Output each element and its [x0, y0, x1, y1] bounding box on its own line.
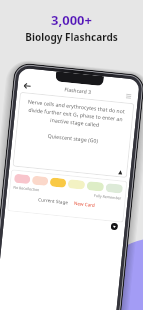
- button[interactable]: Nerve cells and erythrocytes that do not…: [12, 92, 134, 178]
- button[interactable]: Stage: [50, 177, 66, 188]
- button[interactable]: Stage: [14, 174, 31, 184]
- button[interactable]: Stage: [86, 181, 104, 192]
- staticText: Flashcard 3: [64, 86, 92, 96]
- button[interactable]: Stage: [67, 179, 85, 190]
- button[interactable]: Report: [117, 169, 124, 176]
- staticText: Current Stage: [38, 196, 68, 205]
- button[interactable]: Stage: [105, 183, 123, 194]
- button[interactable]: Next card: [110, 223, 118, 230]
- staticText: Nerve cells and erythrocytes that do not…: [23, 97, 128, 131]
- staticText: Fully Remember: [94, 193, 122, 201]
- staticText: 3,000+: [51, 11, 92, 29]
- button[interactable]: Menu: [123, 90, 135, 102]
- staticText: New Card: [74, 200, 95, 208]
- button[interactable]: Back: [21, 80, 33, 92]
- button[interactable]: Stage: [32, 175, 48, 186]
- staticText: No Recollection: [13, 185, 40, 192]
- staticText: Biology Flashcards: [25, 30, 118, 44]
- staticText: Quiescent stage (G0): [47, 132, 99, 144]
